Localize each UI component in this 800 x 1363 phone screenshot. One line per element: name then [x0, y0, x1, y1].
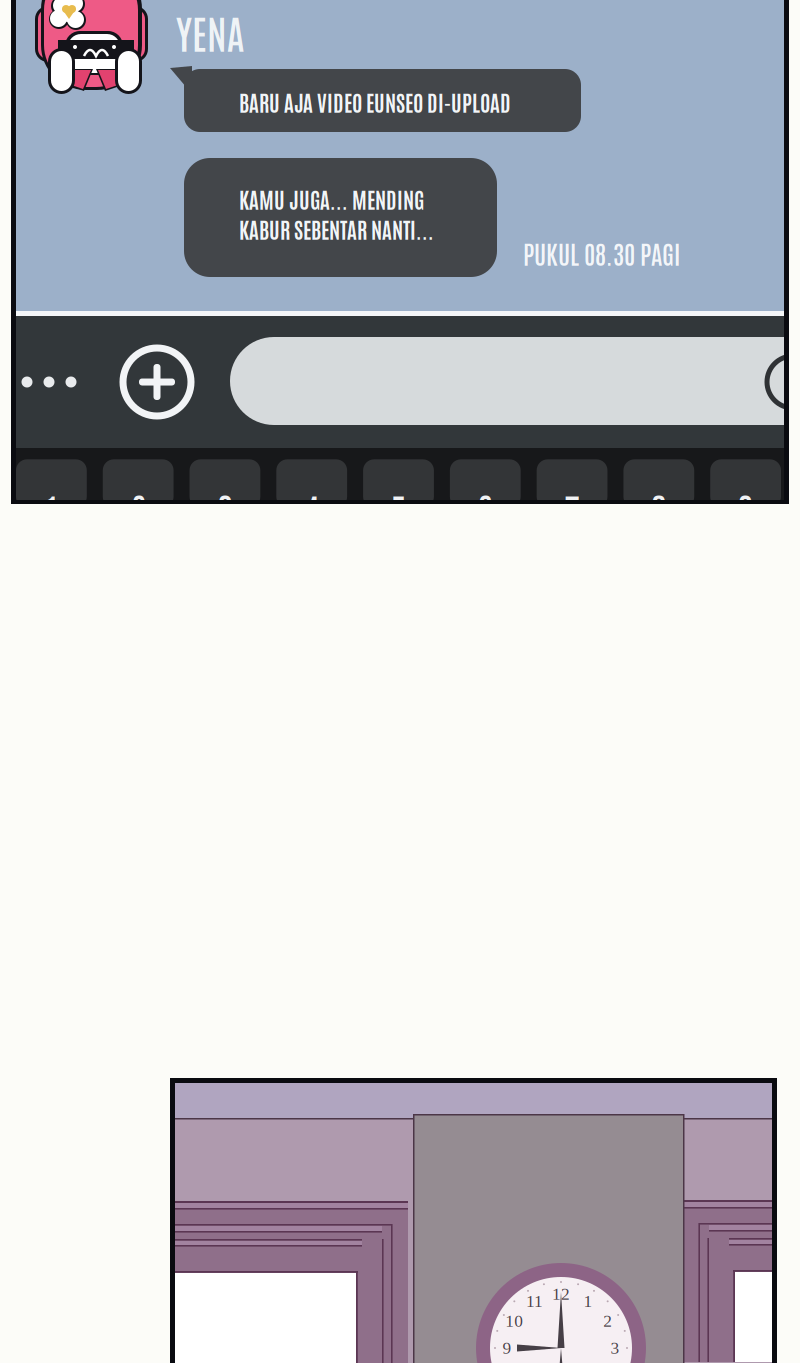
- staticText: 5: [390, 485, 406, 534]
- staticText: 4: [304, 485, 320, 534]
- staticText: 2: [603, 1311, 612, 1331]
- staticText: 7: [564, 485, 580, 534]
- staticText: 1: [583, 1292, 592, 1311]
- staticText: 3: [610, 1338, 619, 1358]
- staticText: 11: [526, 1292, 542, 1311]
- button[interactable]: Add attachment: [109, 316, 205, 448]
- staticText: 9: [738, 485, 754, 534]
- staticText: KAMU JUGA... MENDING: [239, 185, 424, 213]
- staticText: 8: [651, 485, 667, 534]
- staticText: 1: [44, 485, 59, 534]
- staticText: 10: [505, 1311, 523, 1331]
- staticText: 6: [477, 485, 493, 534]
- staticText: YENA: [176, 7, 244, 57]
- staticText: PUKUL 08.30 PAGI: [523, 237, 680, 269]
- button[interactable]: More options: [4, 316, 94, 448]
- staticText: 2: [130, 485, 146, 534]
- staticText: BARU AJA VIDEO EUNSEO DI-UPLOAD: [239, 88, 511, 116]
- staticText: 3: [217, 485, 233, 534]
- staticText: 9: [502, 1338, 511, 1358]
- staticText: 12: [552, 1284, 570, 1304]
- staticText: KABUR SEBENTAR NANTI...: [239, 215, 434, 243]
